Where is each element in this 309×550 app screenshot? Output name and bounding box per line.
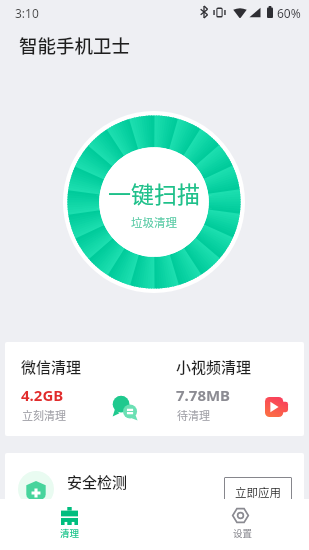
staticText: 4.2GB xyxy=(21,385,64,405)
button[interactable]: 微信清理 xyxy=(5,342,154,436)
staticText: 小视频清理 xyxy=(176,356,252,378)
staticText: 60% xyxy=(277,5,301,21)
staticText: 微信清理 xyxy=(21,356,82,378)
button[interactable]: 设置 xyxy=(216,499,264,550)
staticText: 一键扫描 xyxy=(108,176,200,209)
staticText: 清理 xyxy=(60,526,80,540)
button[interactable]: 清理 xyxy=(45,499,93,550)
button[interactable]: 安全检测 xyxy=(5,453,304,523)
staticText: 设置 xyxy=(233,526,253,540)
button[interactable]: 一键扫描 垃圾清理 xyxy=(63,111,245,293)
button[interactable]: 立即应用 xyxy=(224,477,292,507)
staticText: 立刻清理 xyxy=(22,407,66,423)
staticText: 垃圾清理 xyxy=(131,214,177,231)
staticText: 7.78MB xyxy=(176,385,231,405)
staticText: 安全检测 xyxy=(67,471,128,493)
staticText: 3:10 xyxy=(15,5,39,21)
staticText: 智能手机卫士 xyxy=(19,32,131,59)
staticText: 待清理 xyxy=(177,407,210,423)
staticText: 立即应用 xyxy=(235,484,281,501)
button[interactable]: 小视频清理 xyxy=(154,342,304,436)
